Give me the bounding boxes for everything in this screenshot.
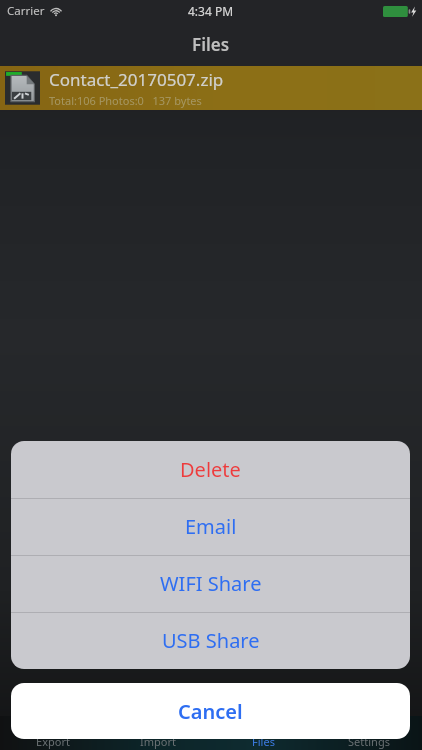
staticText: Import xyxy=(140,734,176,749)
staticText: Carrier xyxy=(7,3,45,19)
staticText: Total:106 Photos:0 137 bytes xyxy=(49,93,202,108)
staticText: 4:34 PM xyxy=(188,3,234,19)
staticText: Cancel xyxy=(178,698,243,725)
staticText: Contact_20170507.zip xyxy=(49,68,224,91)
staticText: Files xyxy=(252,734,275,749)
staticText: USB Share xyxy=(162,627,260,654)
button[interactable]: Files xyxy=(210,716,316,750)
button[interactable]: WIFI Share xyxy=(11,555,410,612)
button[interactable]: Settings xyxy=(316,716,422,750)
button[interactable]: USB Share xyxy=(11,612,410,669)
staticText: Export xyxy=(36,734,70,749)
staticText: Delete xyxy=(180,456,241,483)
button[interactable]: Delete xyxy=(11,441,410,498)
button[interactable]: Cancel xyxy=(11,683,410,739)
staticText: Settings xyxy=(348,734,390,749)
button[interactable]: Email xyxy=(11,498,410,555)
button[interactable]: Import xyxy=(105,716,210,750)
staticText: WIFI Share xyxy=(160,570,262,597)
staticText: Files xyxy=(192,33,230,56)
button[interactable]: Export xyxy=(0,716,105,750)
button[interactable]: Contact_20170507.zip xyxy=(0,66,422,110)
staticText: Email xyxy=(185,513,237,540)
